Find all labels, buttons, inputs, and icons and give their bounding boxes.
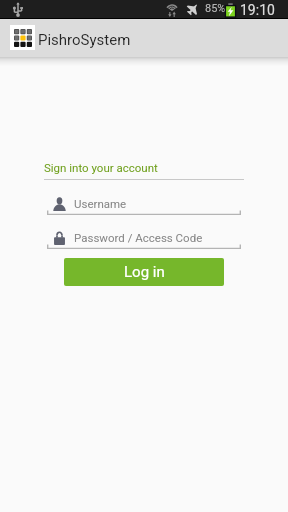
button[interactable]: Password / Access Code [47,229,241,249]
staticText: Sign into your account [44,161,158,174]
button[interactable]: Username [47,195,241,215]
staticText: Username [74,197,127,210]
staticText: PishroSystem [38,31,131,49]
staticText: Log in [124,263,165,281]
button[interactable]: Log in [64,258,224,286]
staticText: Password / Access Code [74,231,203,244]
staticText: 85% [205,2,226,15]
staticText: 19:10 [240,2,275,18]
